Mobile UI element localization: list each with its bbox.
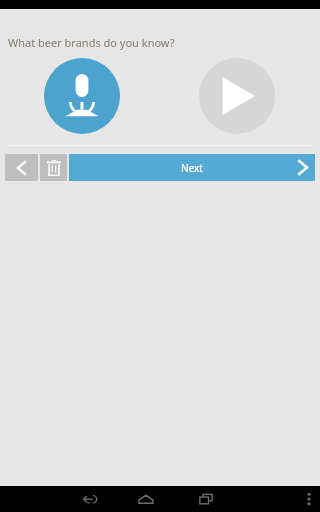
staticText: Next: [181, 161, 203, 175]
button[interactable]: Home: [122, 486, 170, 512]
button[interactable]: Recent apps: [182, 486, 230, 512]
button[interactable]: Back: [62, 486, 110, 512]
button[interactable]: Play: [199, 58, 275, 134]
button[interactable]: Record: [44, 58, 120, 134]
button[interactable]: Delete: [40, 154, 67, 181]
button[interactable]: More options: [298, 486, 320, 512]
staticText: What beer brands do you know?: [8, 35, 175, 50]
button[interactable]: Next: [69, 154, 315, 181]
button[interactable]: Previous: [5, 154, 38, 181]
